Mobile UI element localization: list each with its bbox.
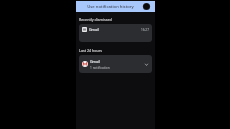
button[interactable]: Expand (144, 62, 149, 67)
staticText: Recently dismissed (79, 17, 112, 22)
staticText: Last 24 hours (79, 48, 103, 53)
staticText: Gmail (90, 59, 100, 64)
staticText: Use notification history (87, 4, 134, 10)
button[interactable]: Use notification history (76, 1, 155, 12)
staticText: Gmail (89, 27, 99, 32)
button[interactable]: Use notification history toggle (142, 2, 151, 11)
staticText: 1 notification (90, 66, 110, 70)
button[interactable]: Gmail (79, 55, 152, 73)
button[interactable]: Gmail (79, 24, 152, 42)
staticText: 16:27 (141, 28, 149, 32)
